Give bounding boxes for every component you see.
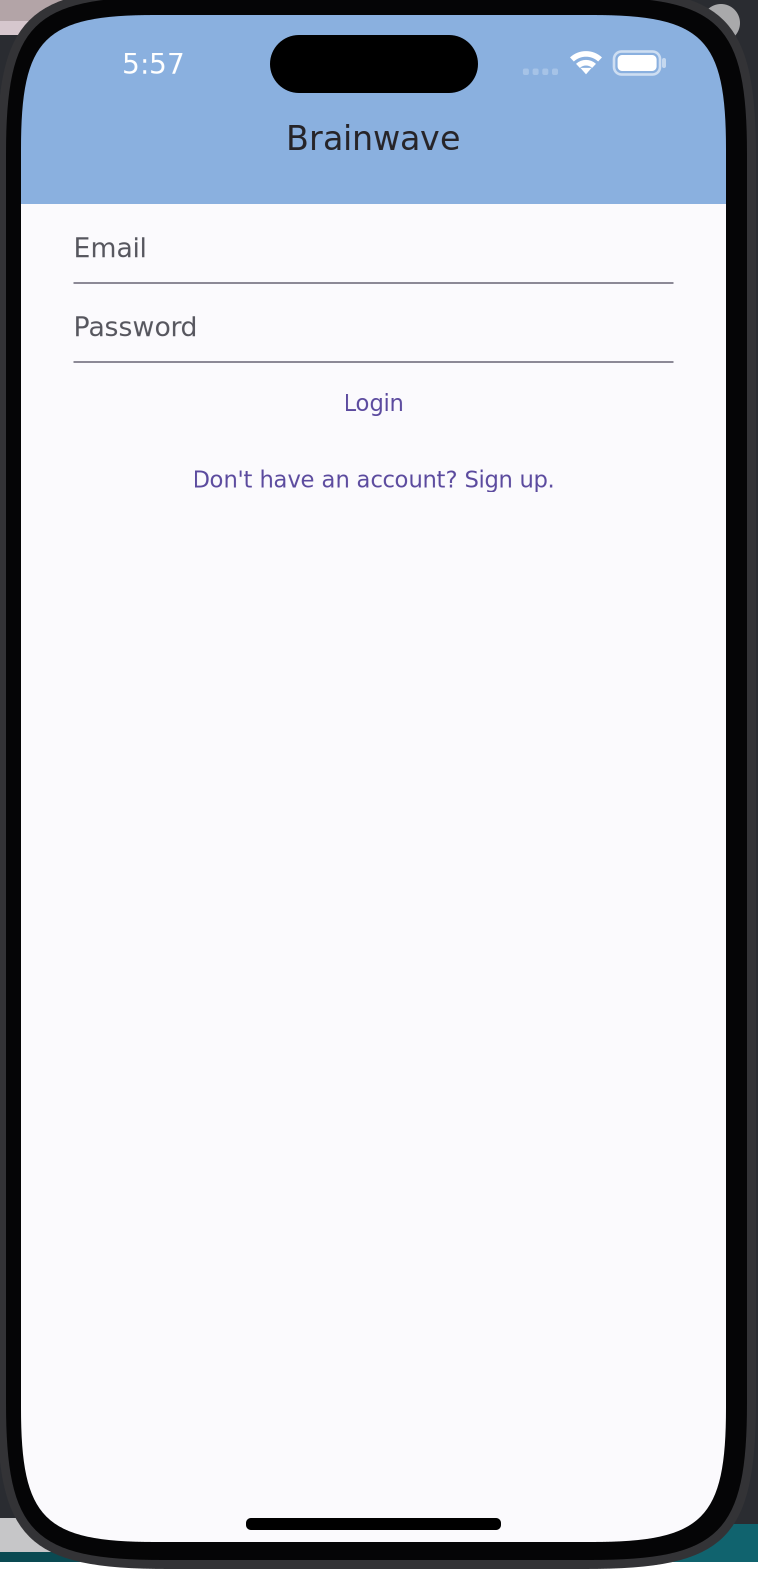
staticText: Login bbox=[343, 390, 403, 416]
staticText: 5:57 bbox=[122, 48, 185, 80]
button[interactable]: Email bbox=[73, 230, 673, 284]
staticText: Email bbox=[73, 232, 146, 263]
button[interactable]: Don't have an account? Sign up. bbox=[172, 422, 574, 501]
staticText: Don't have an account? Sign up. bbox=[192, 466, 554, 493]
staticText: Password bbox=[73, 311, 197, 342]
staticText: Brainwave bbox=[286, 119, 461, 158]
button[interactable]: Password bbox=[73, 309, 673, 363]
button[interactable]: Login bbox=[317, 363, 429, 422]
